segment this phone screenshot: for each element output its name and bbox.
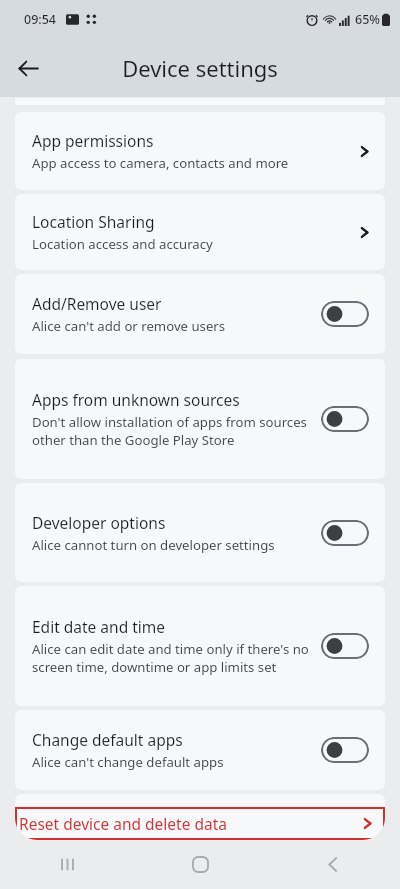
button[interactable]: Back <box>6 46 50 90</box>
button[interactable]: Toggle <box>321 737 369 763</box>
staticText: 65% <box>355 11 380 28</box>
button[interactable]: Location Sharing <box>15 194 385 270</box>
staticText: Alice can't add or remove users <box>32 317 226 335</box>
button[interactable]: Reset device and delete data <box>15 807 385 840</box>
button[interactable]: Apps from unknown sources <box>15 359 385 479</box>
staticText: Alice can't change default apps <box>32 753 224 771</box>
staticText: Reset device and delete data <box>19 813 361 834</box>
button[interactable]: Recent apps <box>0 840 134 889</box>
button[interactable]: App permissions <box>15 112 385 190</box>
staticText: Alice cannot turn on developer settings <box>32 536 275 554</box>
staticText: Location access and accuracy <box>32 235 213 253</box>
staticText: Change default apps <box>32 729 183 750</box>
staticText: App access to camera, contacts and more <box>32 154 289 172</box>
button[interactable]: Toggle <box>321 301 369 327</box>
button[interactable]: Toggle <box>321 520 369 546</box>
button[interactable]: Change default apps <box>15 710 385 790</box>
staticText: Location Sharing <box>32 211 155 232</box>
button[interactable]: Toggle <box>321 633 369 659</box>
button[interactable]: Back <box>267 840 400 889</box>
staticText: Don't allow installation of apps from so… <box>32 413 313 449</box>
staticText: Developer options <box>32 512 166 533</box>
staticText: Edit date and time <box>32 616 166 637</box>
staticText: Add/Remove user <box>32 293 162 314</box>
button[interactable]: Home <box>134 840 267 889</box>
staticText: App permissions <box>32 130 154 151</box>
button[interactable]: Toggle <box>321 406 369 432</box>
staticText: 09:54 <box>24 11 57 28</box>
button[interactable]: Add/Remove user <box>15 274 385 354</box>
staticText: Apps from unknown sources <box>32 389 240 410</box>
button[interactable]: Edit date and time <box>15 586 385 706</box>
staticText: Device settings <box>122 53 278 83</box>
button[interactable]: Developer options <box>15 483 385 582</box>
staticText: Alice can edit date and time only if the… <box>32 640 313 676</box>
